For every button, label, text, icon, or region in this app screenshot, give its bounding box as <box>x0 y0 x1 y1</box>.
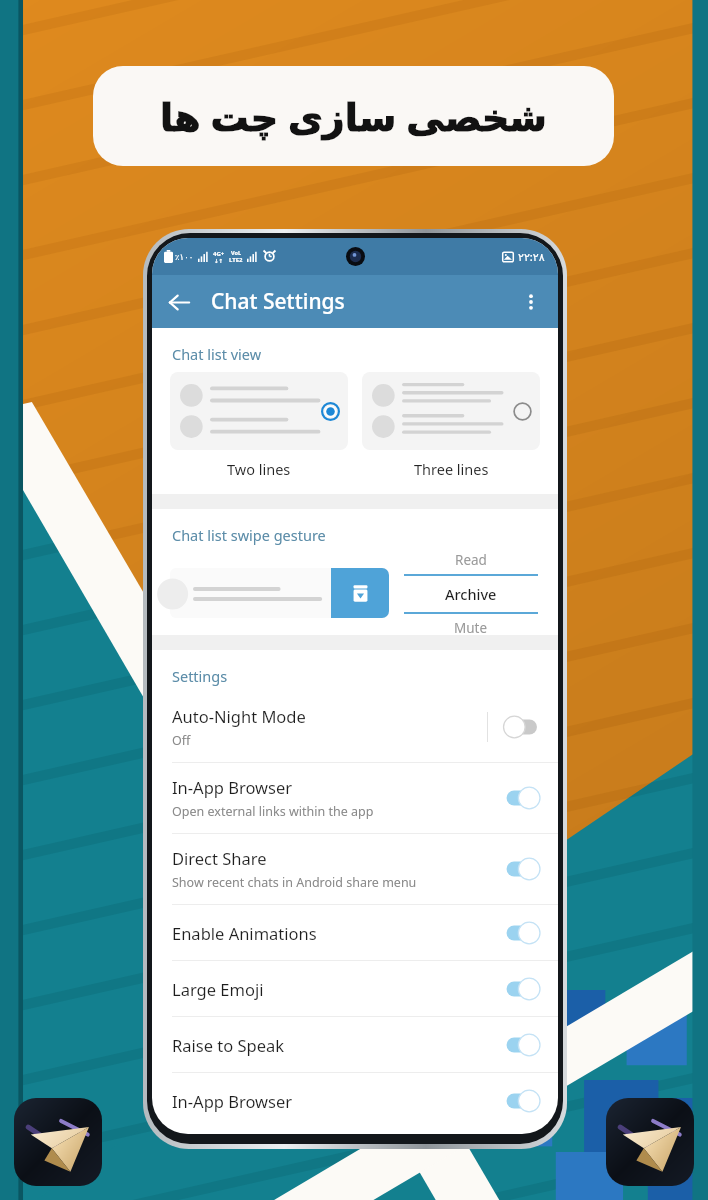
button[interactable]: Raise to Speak <box>152 1017 558 1072</box>
button[interactable]: Enable Animations, on <box>502 918 540 948</box>
staticText: Read <box>455 551 487 569</box>
staticText: Show recent chats in Android share menu <box>172 874 417 891</box>
staticText: Open external links within the app <box>172 803 374 820</box>
staticText: Enable Animations <box>172 922 317 944</box>
button[interactable]: Direct Share, on <box>502 854 540 884</box>
staticText: شخصی سازی چت ها <box>160 90 547 142</box>
staticText: In-App Browser <box>172 1090 293 1112</box>
staticText: Off <box>172 732 191 749</box>
staticText: ↓↑ <box>214 258 224 264</box>
staticText: Settings <box>172 666 228 686</box>
button[interactable]: Enable Animations <box>152 905 558 960</box>
staticText: Chat Settings <box>211 287 345 316</box>
button[interactable]: Auto-Night Mode, off <box>502 712 540 742</box>
button[interactable]: Back <box>157 280 201 324</box>
staticText: Two lines <box>227 459 291 479</box>
staticText: Three lines <box>414 459 489 479</box>
staticText: Direct Share <box>172 847 267 869</box>
staticText: VoL <box>231 249 241 256</box>
staticText: Large Emoji <box>172 978 264 1000</box>
staticText: Chat list swipe gesture <box>172 525 326 545</box>
button[interactable]: In-App Browser, on <box>502 1086 540 1116</box>
button[interactable]: Two lines <box>170 372 348 479</box>
button[interactable]: Auto-Night Mode <box>152 692 558 762</box>
staticText: ٪١٠٠ <box>175 252 194 262</box>
staticText: Archive <box>445 584 497 604</box>
button[interactable]: More options <box>509 280 553 324</box>
button[interactable]: Large Emoji <box>152 961 558 1016</box>
staticText: Chat list view <box>172 344 262 364</box>
staticText: In-App Browser <box>172 776 293 798</box>
staticText: ٢٢:٢٨ <box>518 249 545 264</box>
staticText: 4G+ <box>213 250 225 258</box>
button[interactable]: Direct Share <box>152 834 558 904</box>
button[interactable]: In-App Browser, on <box>502 783 540 813</box>
staticText: Auto-Night Mode <box>172 705 306 727</box>
button[interactable]: Three lines <box>362 372 540 479</box>
button[interactable]: In-App Browser <box>152 1073 558 1128</box>
staticText: LTE2 <box>229 256 243 264</box>
staticText: Mute <box>454 619 488 635</box>
button[interactable]: App icon <box>606 1098 694 1186</box>
button[interactable]: App icon <box>14 1098 102 1186</box>
button[interactable]: Archive <box>445 584 497 604</box>
button[interactable]: Large Emoji, on <box>502 974 540 1004</box>
button[interactable]: Raise to Speak, on <box>502 1030 540 1060</box>
button[interactable]: Archive <box>331 568 389 618</box>
button[interactable]: In-App Browser <box>152 763 558 833</box>
staticText: Raise to Speak <box>172 1034 285 1056</box>
